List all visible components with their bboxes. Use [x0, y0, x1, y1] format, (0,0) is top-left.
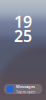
staticText: 19: [14, 11, 32, 32]
button[interactable]: Messages: [4, 84, 42, 94]
staticText: Tap to open: [16, 89, 35, 94]
staticText: 25: [14, 25, 32, 46]
staticText: Messages: [16, 84, 35, 89]
